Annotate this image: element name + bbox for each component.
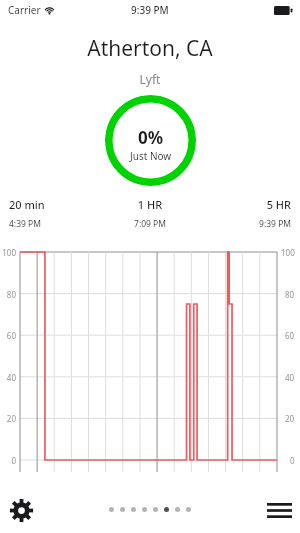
staticText: 40 [0,372,16,383]
button[interactable]: Settings [6,495,36,525]
staticText: 7:09 PM [103,218,197,230]
staticText: 5 HR [197,197,291,212]
staticText: 20 min [9,197,103,212]
staticText: 100 [281,247,295,258]
staticText: 0 [290,455,295,466]
staticText: 0 [0,455,16,466]
staticText: 0% [138,126,164,149]
staticText: Just Now [130,149,172,163]
button[interactable]: 0% [105,95,196,186]
staticText: 9:39 PM [197,218,291,230]
button[interactable]: 5 HR [197,197,291,230]
staticText: Carrier [8,3,41,17]
button[interactable]: Menu [264,495,294,525]
staticText: 40 [285,372,295,383]
staticText: 1 HR [103,197,197,212]
staticText: 80 [0,289,16,300]
button[interactable]: 1 HR [103,197,197,230]
staticText: Atherton, CA [0,34,300,63]
staticText: 60 [0,330,16,341]
staticText: 9:39 PM [131,3,169,17]
staticText: 4:39 PM [9,218,103,230]
staticText: 20 [285,413,295,424]
button[interactable]: 20 min [9,197,103,230]
staticText: 100 [0,247,16,258]
staticText: 20 [0,413,16,424]
staticText: Lyft [0,71,300,87]
staticText: 60 [285,330,295,341]
staticText: 80 [285,289,295,300]
